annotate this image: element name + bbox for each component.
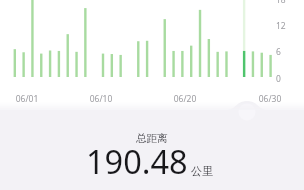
staticText: 18 [276, 0, 286, 6]
staticText: 公里 [191, 164, 213, 178]
staticText: 190.48 [86, 139, 188, 183]
staticText: 总距离 [136, 132, 168, 145]
staticText: 6 [276, 46, 281, 58]
staticText: 12 [276, 20, 286, 32]
staticText: 06/10 [86, 93, 116, 105]
staticText: 0 [276, 73, 281, 85]
staticText: 06/30 [255, 93, 285, 105]
staticText: 06/20 [170, 93, 200, 105]
staticText: 06/01 [12, 93, 42, 105]
